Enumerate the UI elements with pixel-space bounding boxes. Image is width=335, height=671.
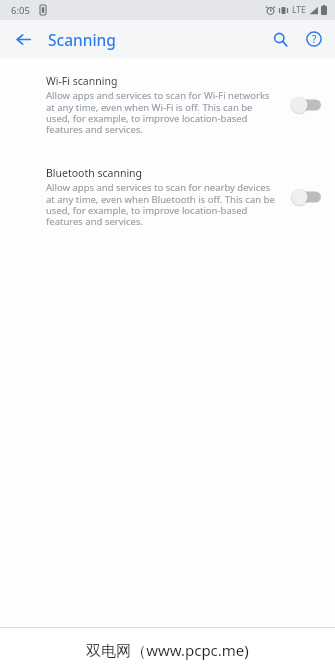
button[interactable]: Back: [6, 22, 40, 56]
staticText: Allow apps and services to scan for Wi-F…: [46, 89, 277, 136]
staticText: Wi-Fi scanning: [46, 74, 118, 88]
button[interactable]: Search: [263, 22, 297, 56]
staticText: ?: [312, 32, 317, 46]
staticText: Scanning: [48, 29, 116, 50]
staticText: Allow apps and services to scan for near…: [46, 181, 277, 228]
button[interactable]: Toggle off: [287, 93, 327, 117]
button[interactable]: Bluetooth scanning: [0, 160, 335, 234]
button[interactable]: Toggle off: [287, 185, 327, 209]
staticText: 双电网（www.pcpc.me): [86, 640, 249, 660]
button[interactable]: Wi-Fi scanning: [0, 68, 335, 142]
staticText: Bluetooth scanning: [46, 166, 143, 180]
button[interactable]: Help: [297, 22, 331, 56]
staticText: LTE: [292, 4, 306, 16]
staticText: 6:05: [11, 4, 30, 17]
